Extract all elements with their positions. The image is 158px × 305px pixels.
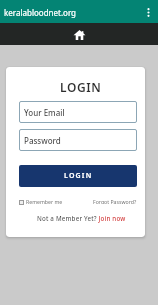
staticText: LOGIN [60,79,102,93]
staticText: Remember me [26,198,63,204]
staticText: Password [24,135,61,146]
button[interactable]: keralabloodnet.org [0,0,158,23]
staticText: keralabloodnet.org [4,7,77,18]
button[interactable] [0,23,158,45]
button[interactable]: Remember me [19,199,63,205]
button[interactable]: Not a Member Yet? Join now [19,214,137,222]
button[interactable]: Forgot Password? [93,199,137,205]
button[interactable]: Password [19,129,137,151]
staticText: Not a Member Yet? Join now [37,214,126,222]
button[interactable]: Your Email [19,101,137,123]
button[interactable]: LOGIN [19,165,137,187]
staticText: Your Email [24,107,65,118]
staticText: LOGIN [64,171,93,181]
